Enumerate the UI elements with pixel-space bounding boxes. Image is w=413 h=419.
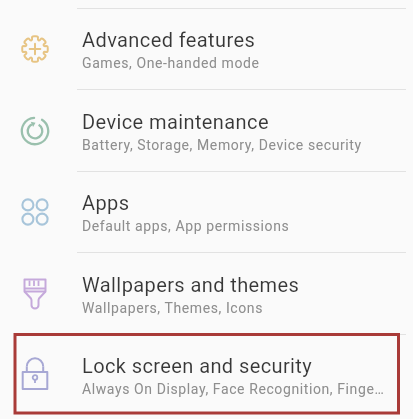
staticText: Advanced features: [82, 28, 256, 51]
button[interactable]: Device maintenance: [0, 90, 413, 172]
staticText: Always On Display, Face Recognition, Fin…: [82, 381, 385, 397]
staticText: Games, One-handed mode: [82, 55, 260, 71]
staticText: Wallpapers, Themes, Icons: [82, 300, 264, 316]
button[interactable]: Advanced features: [0, 8, 413, 90]
button[interactable]: Lock screen and security: [0, 334, 413, 416]
staticText: Device maintenance: [82, 110, 269, 133]
staticText: Lock screen and security: [82, 354, 313, 377]
staticText: Apps: [82, 191, 130, 214]
staticText: Wallpapers and themes: [82, 273, 300, 296]
staticText: Default apps, App permissions: [82, 218, 290, 234]
staticText: Battery, Storage, Memory, Device securit…: [82, 137, 362, 153]
button[interactable]: Wallpapers and themes: [0, 253, 413, 335]
button[interactable]: Apps: [0, 171, 413, 253]
